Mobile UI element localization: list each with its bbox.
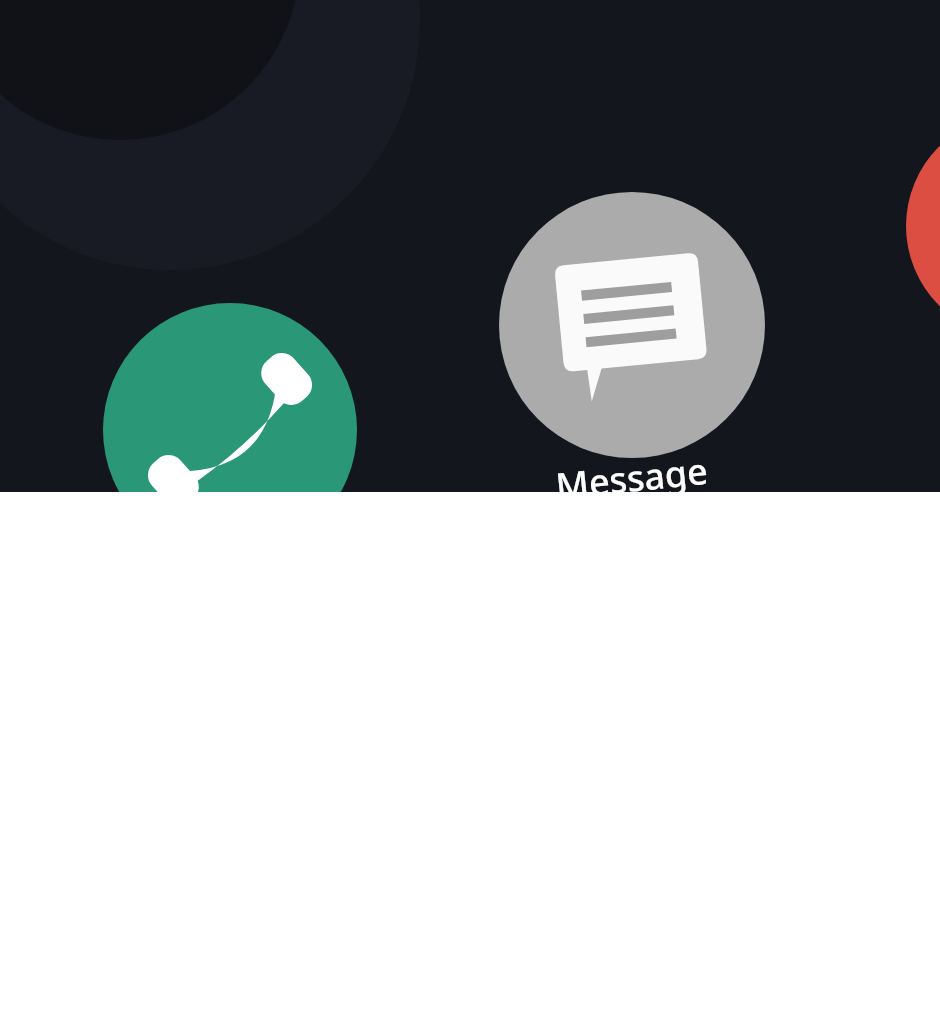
- button[interactable]: App shortcuts: [0, 0, 940, 1034]
